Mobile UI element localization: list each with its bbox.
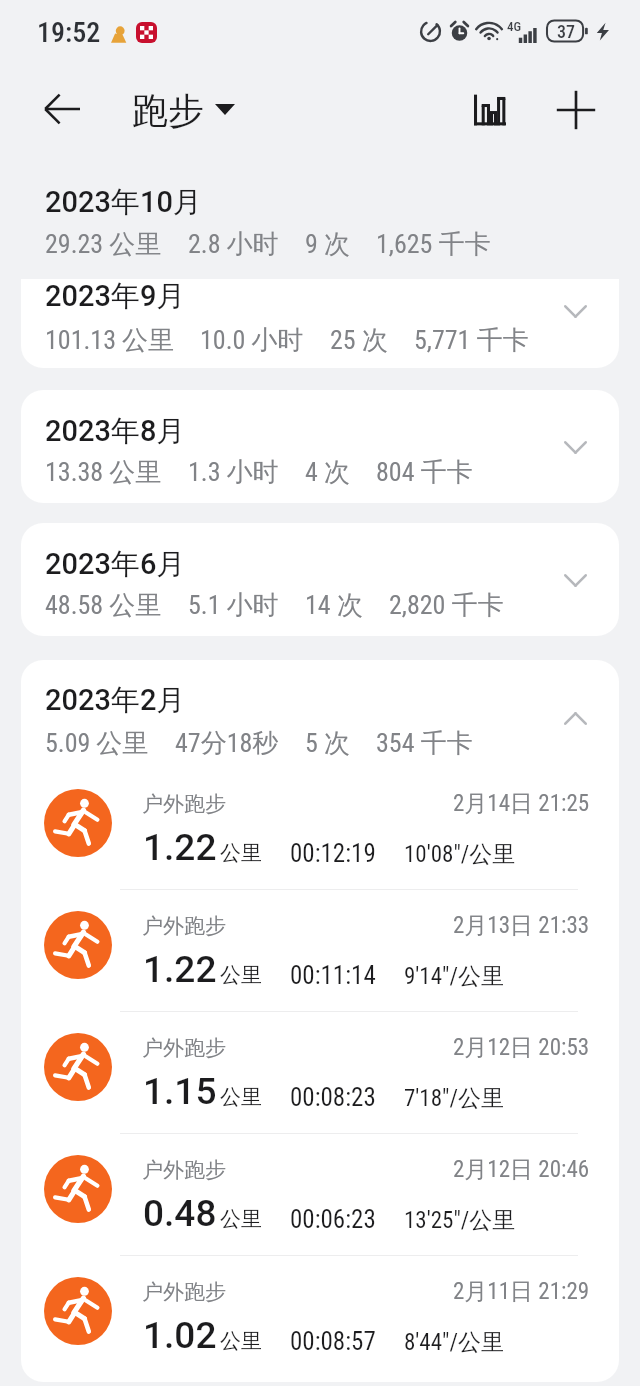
staticText: 1.3 小时 [188, 456, 279, 489]
staticText: 804 千卡 [376, 456, 473, 489]
staticText: 47分18秒 [175, 727, 279, 760]
staticText: 13.38 公里 [45, 456, 162, 489]
staticText: 户外跑步 [142, 913, 226, 939]
staticText: 00:08:23 [290, 1083, 376, 1112]
staticText: 公里 [220, 1084, 262, 1110]
button[interactable]: 户外跑步 [21, 1012, 619, 1134]
staticText: 10.0 小时 [200, 324, 304, 357]
staticText: 19:52 [37, 16, 101, 49]
staticText: 8'44"/公里 [404, 1328, 504, 1357]
staticText: 2023年9月 [45, 279, 186, 315]
staticText: 户外跑步 [142, 791, 226, 817]
button[interactable]: 2023年10月 [21, 160, 619, 279]
staticText: 户外跑步 [142, 1157, 226, 1183]
staticText: 0.48 [143, 1192, 217, 1235]
button[interactable]: 户外跑步 [21, 890, 619, 1012]
button[interactable]: 户外跑步 [21, 1256, 619, 1378]
staticText: 48.58 公里 [45, 589, 162, 622]
staticText: 1.02 [143, 1314, 217, 1357]
staticText: 公里 [220, 962, 262, 988]
staticText: 公里 [220, 840, 262, 866]
button[interactable]: Statistics [462, 82, 518, 138]
staticText: 5.09 公里 [45, 727, 149, 760]
staticText: 25 次 [330, 324, 388, 357]
staticText: 4G [507, 19, 522, 34]
staticText: 5,771 千卡 [414, 324, 529, 357]
staticText: 2.8 小时 [188, 228, 279, 261]
button[interactable]: Back [36, 84, 88, 136]
staticText: 公里 [220, 1206, 262, 1232]
staticText: 00:06:23 [290, 1205, 376, 1234]
button[interactable]: 2023年6月 [21, 523, 619, 636]
staticText: 00:08:57 [290, 1327, 376, 1356]
button[interactable]: 户外跑步 [21, 1134, 619, 1256]
staticText: 00:12:19 [290, 839, 376, 868]
staticText: 户外跑步 [142, 1035, 226, 1061]
staticText: 户外跑步 [142, 1279, 226, 1305]
staticText: 4 次 [305, 456, 350, 489]
staticText: 2月13日 21:33 [453, 911, 590, 940]
staticText: 5.1 小时 [188, 589, 279, 622]
button[interactable]: 2023年8月 [21, 390, 619, 503]
button[interactable]: 户外跑步 [21, 768, 619, 890]
staticText: 1.22 [143, 826, 217, 869]
staticText: 1.22 [143, 948, 217, 991]
staticText: 29.23 公里 [45, 228, 162, 261]
staticText: 10'08"/公里 [404, 840, 516, 869]
staticText: 13'25"/公里 [404, 1206, 516, 1235]
staticText: 101.13 公里 [45, 324, 174, 357]
staticText: 7'18"/公里 [404, 1084, 504, 1113]
staticText: 公里 [220, 1328, 262, 1354]
staticText: 14 次 [305, 589, 363, 622]
staticText: 2023年6月 [45, 546, 186, 583]
staticText: 1.15 [143, 1070, 217, 1113]
staticText: 2月12日 20:53 [453, 1033, 590, 1062]
staticText: 5 次 [305, 727, 350, 760]
staticText: 9 次 [305, 228, 350, 261]
staticText: 2月11日 21:29 [453, 1277, 590, 1306]
staticText: 2月14日 21:25 [453, 789, 590, 818]
staticText: 00:11:14 [290, 961, 376, 990]
button[interactable]: 2023年2月 [21, 660, 619, 768]
staticText: 2月12日 20:46 [453, 1155, 590, 1184]
staticText: 1,625 千卡 [376, 228, 491, 261]
staticText: 2,820 千卡 [389, 589, 504, 622]
staticText: 跑步 [132, 88, 204, 133]
button[interactable]: Add [548, 82, 604, 138]
staticText: 354 千卡 [376, 727, 473, 760]
staticText: 2023年2月 [45, 682, 186, 719]
staticText: 9'14"/公里 [404, 962, 504, 991]
button[interactable]: 2023年9月 [21, 279, 619, 368]
staticText: 2023年8月 [45, 413, 186, 450]
button[interactable]: 跑步 [132, 88, 235, 133]
staticText: 2023年10月 [45, 184, 202, 221]
staticText: 37 [557, 21, 576, 42]
